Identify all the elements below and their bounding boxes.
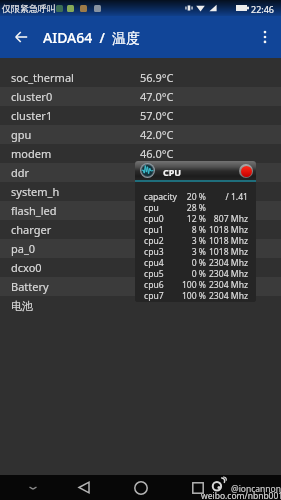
staticText: 100 % <box>144 290 206 301</box>
staticText: AIDA64 / 温度 <box>43 28 141 47</box>
button[interactable]: Back <box>69 475 98 500</box>
staticText: dcxo0 <box>11 260 42 275</box>
button[interactable]: flash_led <box>0 201 281 220</box>
button[interactable]: dcxo0 <box>0 258 281 277</box>
staticText: 仅限紧急呼叫 <box>2 3 56 14</box>
button[interactable]: pa_0 <box>0 239 281 258</box>
staticText: cpu5 <box>144 268 164 279</box>
staticText: 22:46 <box>251 3 275 15</box>
staticText: ddr <box>11 165 30 180</box>
staticText: 0 % <box>144 257 206 268</box>
button[interactable]: soc_thermal <box>0 68 281 87</box>
staticText: 46.0°C <box>140 165 174 180</box>
button[interactable]: cluster1 <box>0 106 281 125</box>
staticText: soc_thermal <box>11 70 74 85</box>
staticText: cpu2 <box>144 235 164 246</box>
button[interactable]: CPU <box>135 161 256 302</box>
staticText: cluster1 <box>11 108 53 123</box>
staticText: cluster0 <box>11 89 53 104</box>
staticText: 12 % <box>144 213 206 224</box>
staticText: 2304 Mhz <box>206 257 248 268</box>
button[interactable]: Home <box>126 475 155 500</box>
button[interactable]: charger <box>0 220 281 239</box>
staticText: 20 % <box>144 191 206 202</box>
staticText: cpu4 <box>144 257 164 268</box>
staticText: weibo.com/nbnb001 <box>201 490 281 500</box>
staticText: 8 % <box>144 224 206 235</box>
staticText: flash_led <box>11 203 57 218</box>
staticText: / 1.41 <box>206 191 248 202</box>
staticText: 1018 Mhz <box>206 246 248 257</box>
staticText: 47.0°C <box>140 89 174 104</box>
staticText: cpu3 <box>144 246 164 257</box>
staticText: gpu <box>11 127 32 142</box>
button[interactable]: More options <box>245 17 281 57</box>
button[interactable]: Back <box>1 17 41 57</box>
staticText: 28 % <box>144 202 206 213</box>
staticText: cpu7 <box>144 290 164 301</box>
staticText: modem <box>11 146 52 161</box>
staticText: 46.0°C <box>140 146 174 161</box>
staticText: @ioncannon <box>231 483 281 495</box>
button[interactable]: Battery <box>0 277 281 296</box>
staticText: capacity <box>144 191 177 202</box>
staticText: 3 % <box>144 246 206 257</box>
button[interactable]: cluster0 <box>0 87 281 106</box>
staticText: 2304 Mhz <box>206 268 248 279</box>
staticText: 100 % <box>144 279 206 290</box>
staticText: 1018 Mhz <box>206 224 248 235</box>
button[interactable]: modem <box>0 144 281 163</box>
staticText: 42.0°C <box>140 127 174 142</box>
staticText: CPU <box>163 166 182 178</box>
staticText: cpu0 <box>144 213 164 224</box>
staticText: pa_0 <box>11 241 36 256</box>
staticText: 57.0°C <box>140 108 174 123</box>
staticText: system_h <box>11 184 60 199</box>
button[interactable]: system_h <box>0 182 281 201</box>
button[interactable]: Hide keyboard <box>21 475 45 500</box>
button[interactable]: Close <box>239 164 253 178</box>
staticText: 3 % <box>144 235 206 246</box>
staticText: cpu <box>144 202 159 213</box>
staticText: 2304 Mhz <box>206 279 248 290</box>
button[interactable]: gpu <box>0 125 281 144</box>
button[interactable]: ddr <box>0 163 281 182</box>
staticText: 0 % <box>144 268 206 279</box>
button[interactable]: Recents <box>183 475 212 500</box>
staticText: cpu6 <box>144 279 164 290</box>
staticText: 2304 Mhz <box>206 290 248 301</box>
staticText: cpu1 <box>144 224 164 235</box>
staticText: 807 Mhz <box>206 213 248 224</box>
button[interactable]: 电池 <box>0 296 281 315</box>
staticText: Battery <box>11 279 49 294</box>
staticText: 电池 <box>11 299 33 313</box>
staticText: 56.9°C <box>140 70 174 85</box>
staticText: 1018 Mhz <box>206 235 248 246</box>
staticText: charger <box>11 222 52 237</box>
